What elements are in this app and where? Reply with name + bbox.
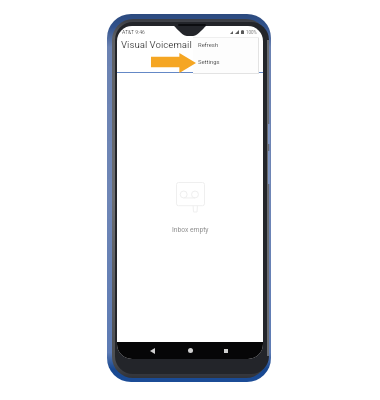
button[interactable]: Refresh [193, 37, 259, 48]
staticText: Refresh [198, 42, 219, 49]
button[interactable]: Settings [193, 59, 259, 70]
button[interactable]: Recent apps [213, 342, 239, 359]
staticText: Visual Voicemail [121, 39, 192, 50]
staticText: AT&T 9:46 [122, 29, 145, 35]
staticText: 100% [246, 30, 257, 35]
button[interactable]: Back [139, 342, 165, 359]
staticText: Inbox empty [172, 226, 209, 234]
button[interactable]: Home [177, 342, 203, 359]
staticText: Settings [198, 59, 220, 66]
